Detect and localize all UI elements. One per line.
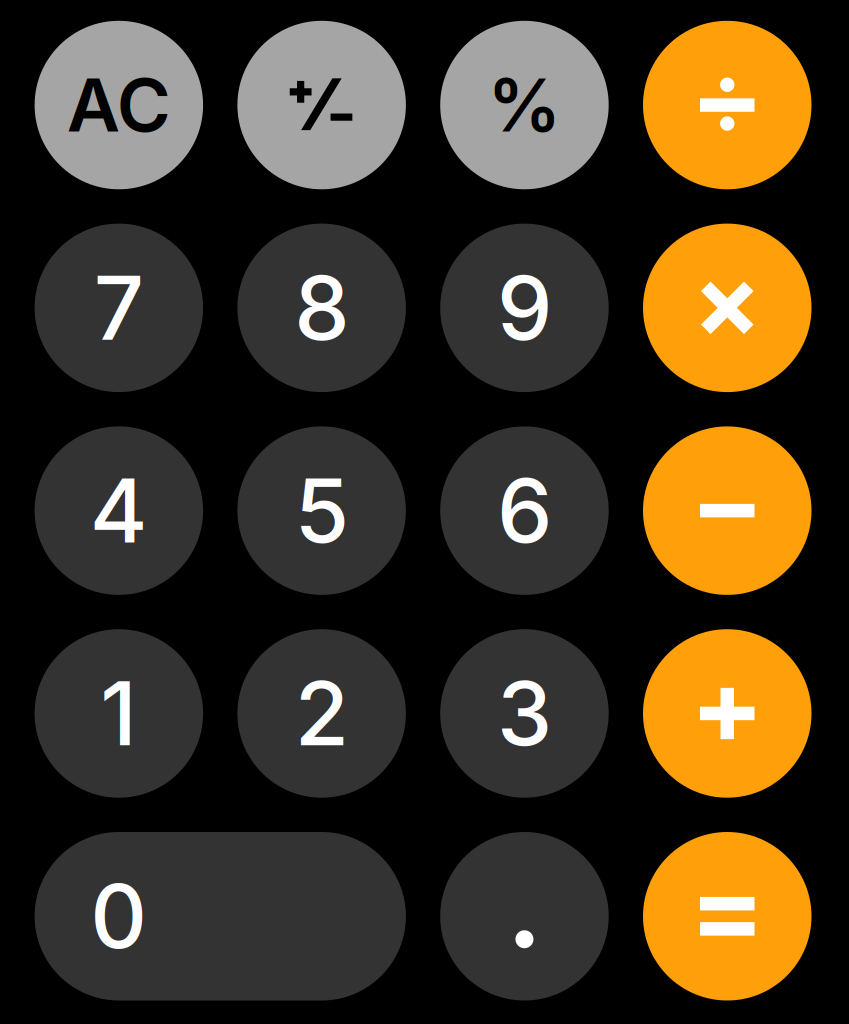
button[interactable]: 3	[440, 629, 609, 798]
button[interactable]: 5	[237, 426, 406, 595]
staticText: %	[487, 60, 561, 149]
button[interactable]: 9	[440, 224, 609, 392]
staticText: 4	[90, 457, 148, 564]
staticText: 6	[497, 457, 552, 564]
staticText: 7	[94, 254, 144, 361]
button[interactable]: 1	[35, 629, 203, 798]
staticText: 9	[497, 254, 552, 361]
staticText: 3	[497, 660, 552, 766]
staticText: 1	[100, 660, 137, 766]
staticText: 2	[295, 660, 349, 766]
button[interactable]: AC	[35, 21, 203, 189]
button[interactable]: Divide	[643, 21, 811, 189]
button[interactable]: %	[440, 21, 609, 189]
button[interactable]: 8	[237, 224, 406, 392]
staticText: 5	[295, 457, 349, 564]
staticText: AC	[67, 60, 171, 149]
button[interactable]: 0	[35, 832, 406, 1000]
button[interactable]: Multiply	[643, 224, 811, 392]
button[interactable]: Plus minus	[237, 21, 406, 189]
button[interactable]: Add	[643, 629, 811, 798]
button[interactable]: 4	[35, 426, 203, 595]
staticText: 0	[90, 863, 147, 969]
button[interactable]: 2	[237, 629, 406, 798]
button[interactable]: Equals	[643, 832, 811, 1000]
button[interactable]: 7	[35, 224, 203, 392]
button[interactable]: Decimal point	[440, 832, 609, 1000]
button[interactable]: 6	[440, 426, 609, 595]
staticText: 8	[294, 254, 349, 361]
button[interactable]: Subtract	[643, 426, 811, 595]
